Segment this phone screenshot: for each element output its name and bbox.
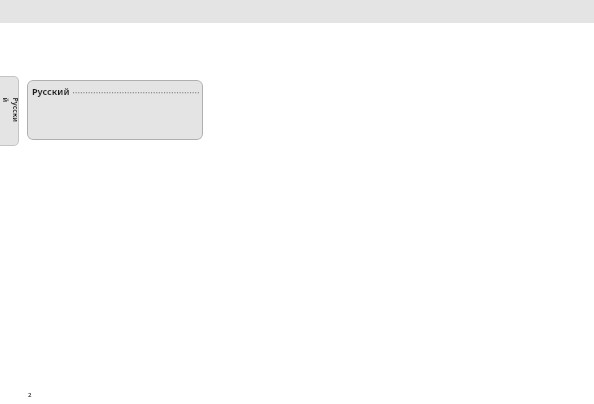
staticText: 2 [28, 391, 32, 399]
button[interactable]: Русский tab [0, 76, 19, 146]
staticText: Русский [32, 85, 70, 97]
staticText: Русский [0, 97, 19, 124]
button[interactable]: Русский [27, 80, 203, 140]
